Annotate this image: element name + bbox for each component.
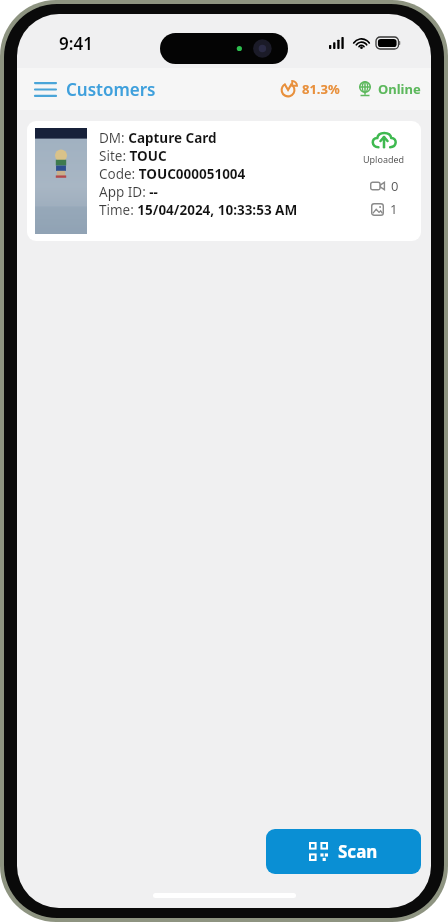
staticText: DM: Capture Card — [99, 129, 217, 147]
staticText: Site: TOUC — [99, 147, 167, 165]
staticText: Uploaded — [363, 153, 405, 165]
staticText: 9:41 — [59, 32, 93, 55]
staticText: App ID: -- — [99, 183, 158, 201]
button[interactable]: Scan — [266, 829, 421, 874]
staticText: 81.3% — [302, 80, 340, 98]
button[interactable]: Menu — [27, 71, 63, 107]
staticText: Code: TOUC000051004 — [99, 165, 246, 183]
staticText: Scan — [338, 840, 378, 863]
button[interactable]: Online — [357, 80, 421, 98]
staticText: Online — [378, 80, 421, 98]
button[interactable]: Customers — [66, 78, 156, 101]
button[interactable]: 81.3% — [281, 80, 340, 98]
button[interactable]: DM: Capture Card — [27, 121, 421, 241]
staticText: 1 — [390, 200, 398, 218]
staticText: 0 — [391, 177, 399, 195]
staticText: Time: 15/04/2024, 10:33:53 AM — [99, 201, 298, 219]
